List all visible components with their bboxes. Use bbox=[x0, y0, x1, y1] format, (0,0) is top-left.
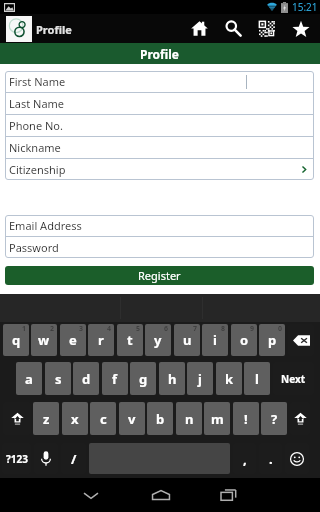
button[interactable]: m bbox=[204, 402, 230, 435]
staticText: , bbox=[243, 450, 247, 468]
staticText: 6 bbox=[164, 324, 169, 334]
button[interactable]: Voice input bbox=[34, 443, 58, 474]
button[interactable]: h bbox=[159, 362, 185, 395]
button[interactable]: Next bbox=[273, 362, 314, 395]
button[interactable]: ! bbox=[233, 402, 259, 435]
staticText: c bbox=[100, 410, 107, 428]
staticText: g bbox=[139, 370, 148, 388]
staticText: 5 bbox=[136, 324, 141, 334]
staticText: Nickname bbox=[9, 140, 61, 155]
staticText: t bbox=[127, 331, 133, 349]
staticText: . bbox=[269, 450, 273, 468]
staticText: Register bbox=[138, 268, 181, 283]
button[interactable]: App icon bbox=[6, 16, 32, 42]
staticText: i bbox=[213, 331, 217, 349]
button[interactable]: q bbox=[3, 324, 29, 356]
staticText: 1 bbox=[22, 324, 27, 334]
button[interactable]: v bbox=[119, 402, 145, 435]
button[interactable]: p bbox=[259, 324, 285, 356]
staticText: 3 bbox=[79, 324, 84, 334]
button[interactable]: e bbox=[60, 324, 86, 356]
button[interactable]: i bbox=[202, 324, 228, 356]
staticText: w bbox=[38, 331, 50, 349]
button[interactable]: Phone No. bbox=[5, 115, 314, 136]
button[interactable]: Delete bbox=[288, 324, 314, 356]
button[interactable]: Emoji bbox=[285, 443, 309, 474]
button[interactable]: Shift bbox=[3, 402, 31, 435]
button[interactable]: w bbox=[31, 324, 57, 356]
button[interactable]: Hide keyboard bbox=[56, 478, 126, 512]
staticText: 9 bbox=[250, 324, 255, 334]
staticText: u bbox=[183, 331, 192, 349]
staticText: l bbox=[255, 370, 259, 388]
staticText: n bbox=[185, 410, 194, 428]
staticText: e bbox=[69, 331, 77, 349]
button[interactable]: , bbox=[233, 443, 256, 474]
button[interactable]: d bbox=[73, 362, 99, 395]
button[interactable]: r bbox=[88, 324, 114, 356]
button[interactable]: Shift bbox=[290, 402, 310, 435]
staticText: / bbox=[71, 450, 77, 468]
staticText: z bbox=[43, 410, 50, 428]
button[interactable]: y bbox=[145, 324, 171, 356]
staticText: s bbox=[55, 370, 62, 388]
button[interactable]: l bbox=[244, 362, 270, 395]
staticText: m bbox=[211, 410, 224, 428]
staticText: v bbox=[128, 410, 136, 428]
staticText: d bbox=[82, 370, 91, 388]
button[interactable]: x bbox=[62, 402, 88, 435]
staticText: p bbox=[268, 331, 277, 349]
button[interactable]: z bbox=[33, 402, 59, 435]
button[interactable]: Nickname bbox=[5, 137, 314, 158]
staticText: Citizenship bbox=[9, 162, 66, 177]
button[interactable]: . bbox=[259, 443, 282, 474]
button[interactable]: Scan QR code bbox=[250, 14, 284, 43]
button[interactable]: a bbox=[16, 362, 42, 395]
staticText: 15:21 bbox=[292, 0, 318, 14]
button[interactable]: k bbox=[216, 362, 242, 395]
button[interactable]: Home bbox=[182, 14, 216, 43]
button[interactable]: ?123 bbox=[2, 443, 31, 474]
button[interactable]: Last Name bbox=[5, 93, 314, 114]
button[interactable]: u bbox=[174, 324, 200, 356]
staticText: Password bbox=[9, 240, 59, 255]
staticText: Profile bbox=[36, 22, 72, 37]
button[interactable]: o bbox=[231, 324, 257, 356]
button[interactable]: Favorites bbox=[284, 14, 318, 43]
staticText: o bbox=[240, 331, 249, 349]
staticText: Last Name bbox=[9, 96, 65, 111]
staticText: ! bbox=[244, 410, 248, 428]
button[interactable]: g bbox=[130, 362, 156, 395]
staticText: x bbox=[71, 410, 79, 428]
button[interactable]: f bbox=[102, 362, 128, 395]
button[interactable]: c bbox=[90, 402, 116, 435]
staticText: 7 bbox=[193, 324, 198, 334]
staticText: b bbox=[156, 410, 165, 428]
button[interactable]: b bbox=[147, 402, 173, 435]
button[interactable]: Recent apps bbox=[193, 478, 263, 512]
button[interactable]: Home bbox=[126, 478, 196, 512]
staticText: j bbox=[198, 370, 202, 388]
button[interactable]: Citizenship bbox=[5, 159, 314, 180]
staticText: a bbox=[25, 370, 33, 388]
staticText: Profile bbox=[140, 46, 180, 62]
staticText: f bbox=[112, 370, 118, 388]
button[interactable]: Search bbox=[216, 14, 250, 43]
staticText: 2 bbox=[50, 324, 55, 334]
button[interactable]: / bbox=[61, 443, 86, 474]
button[interactable]: Register bbox=[5, 266, 314, 285]
button[interactable]: n bbox=[176, 402, 202, 435]
button[interactable]: Email Address bbox=[5, 215, 314, 236]
staticText: ?123 bbox=[6, 452, 28, 466]
button[interactable]: First Name bbox=[5, 71, 314, 92]
staticText: Email Address bbox=[9, 218, 82, 233]
button[interactable]: s bbox=[45, 362, 71, 395]
button[interactable]: ? bbox=[261, 402, 287, 435]
button[interactable]: Password bbox=[5, 237, 314, 258]
staticText: k bbox=[225, 370, 234, 388]
button[interactable]: t bbox=[117, 324, 143, 356]
button[interactable]: j bbox=[187, 362, 213, 395]
staticText: ? bbox=[271, 410, 278, 428]
staticText: h bbox=[168, 370, 177, 388]
